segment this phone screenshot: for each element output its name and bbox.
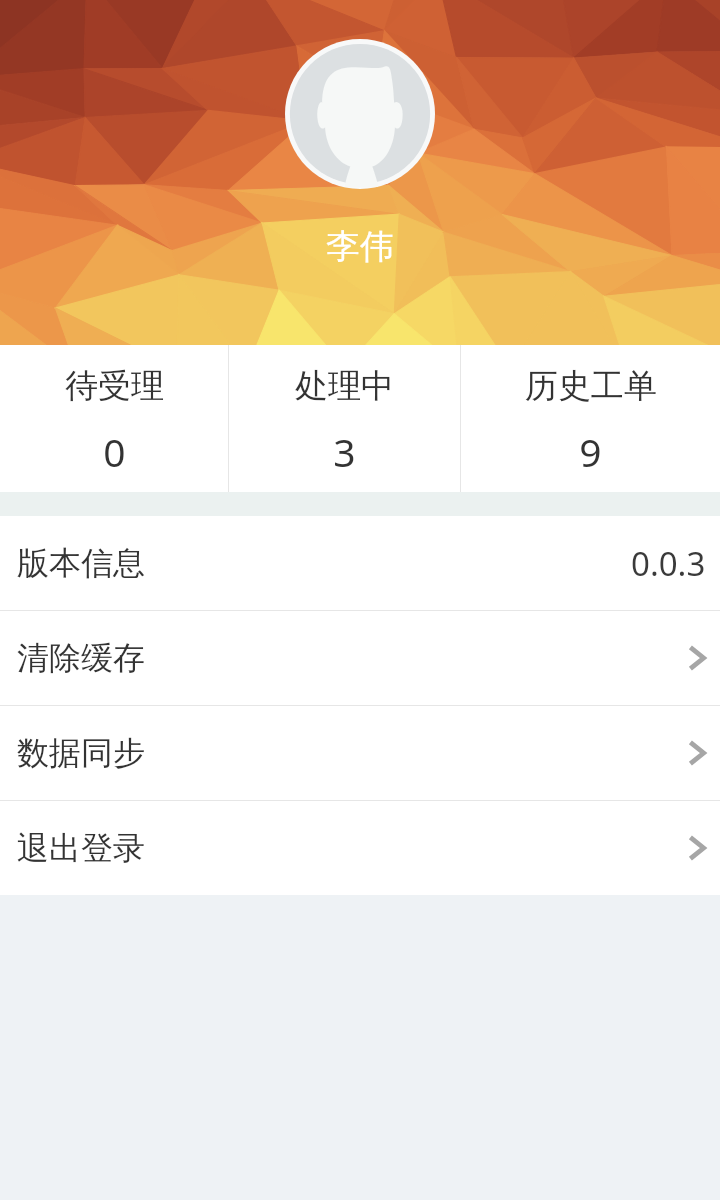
button[interactable]: 处理中 [229,345,460,492]
button[interactable]: 清除缓存 [0,611,720,705]
staticText: 0.0.3 [631,541,706,586]
staticText: 历史工单 [525,365,657,407]
staticText: 退出登录 [17,828,145,868]
button[interactable]: 历史工单 [461,345,720,492]
staticText: 数据同步 [17,733,145,773]
staticText: 3 [333,425,356,478]
staticText: 清除缓存 [17,638,145,678]
staticText: 0 [103,425,126,478]
button[interactable]: 数据同步 [0,706,720,800]
staticText: 版本信息 [17,543,145,583]
button[interactable]: 版本信息 [0,516,720,610]
staticText: 待受理 [65,365,164,407]
button[interactable]: 待受理 [0,345,228,492]
staticText: 李伟 [326,225,394,268]
staticText: 处理中 [295,365,394,407]
staticText: 9 [579,425,602,478]
button[interactable]: 退出登录 [0,801,720,895]
other: User avatar [285,39,435,189]
